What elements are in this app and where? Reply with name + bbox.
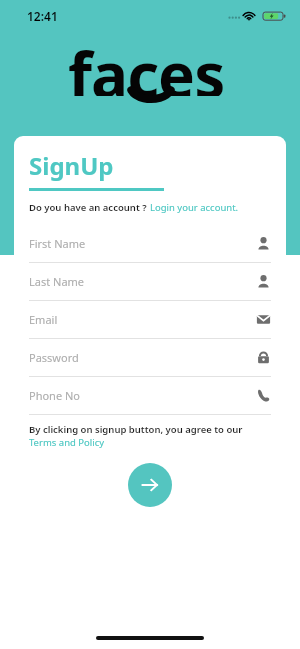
- staticText: SignUp: [29, 149, 114, 182]
- staticText: 12:41: [27, 8, 58, 24]
- button[interactable]: First Name: [29, 226, 271, 264]
- staticText: First Name: [29, 236, 86, 251]
- staticText: Last Name: [29, 274, 85, 289]
- button[interactable]: Submit sign up: [128, 463, 172, 507]
- button[interactable]: Password: [29, 340, 271, 378]
- staticText: Do you have an account ?: [29, 201, 147, 214]
- staticText: Login your account.: [150, 201, 239, 214]
- button[interactable]: Phone No: [29, 378, 271, 416]
- staticText: faces: [68, 32, 225, 96]
- button[interactable]: Login your account.: [150, 201, 239, 214]
- button[interactable]: Email: [29, 302, 271, 340]
- staticText: By clicking on signup button, you agree …: [29, 423, 271, 448]
- staticText: Phone No: [29, 388, 80, 403]
- staticText: Email: [29, 312, 58, 327]
- button[interactable]: Last Name: [29, 264, 271, 302]
- button[interactable]: By clicking on signup button, you agree …: [29, 423, 271, 448]
- staticText: Password: [29, 350, 79, 365]
